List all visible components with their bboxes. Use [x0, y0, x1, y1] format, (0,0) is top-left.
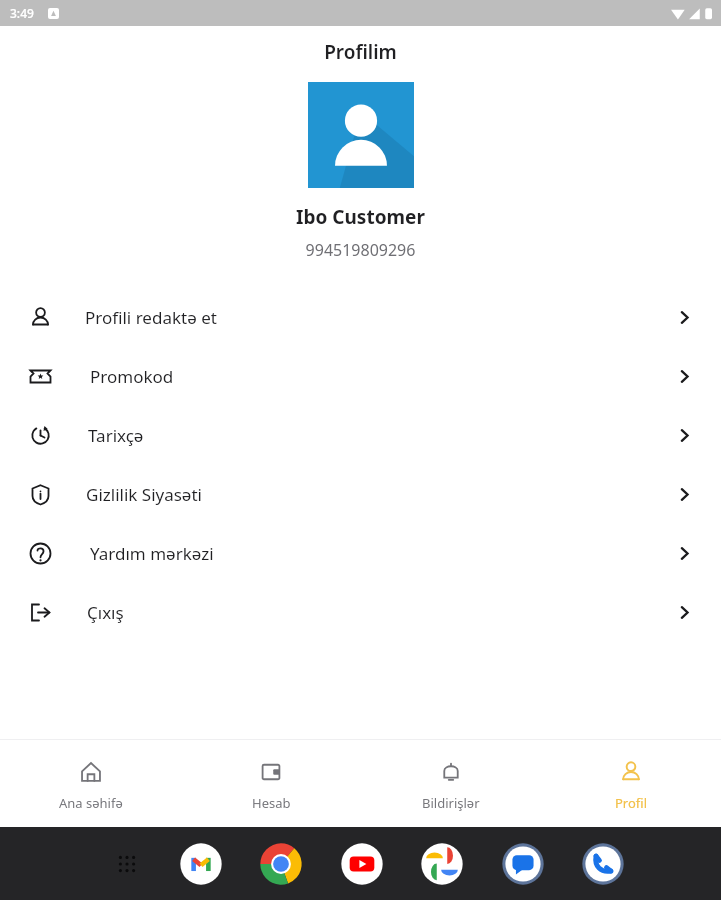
staticText: Profili redaktə et — [85, 306, 217, 329]
button[interactable]: Ana səhifə — [0, 740, 181, 827]
staticText: Profilim — [0, 39, 721, 65]
button[interactable]: Log out — [0, 583, 721, 642]
button[interactable]: YouTube — [340, 842, 384, 886]
staticText: Profil — [615, 794, 648, 812]
staticText: Bildirişlər — [422, 794, 480, 812]
button[interactable]: Profil — [541, 740, 721, 827]
button[interactable]: Gmail — [179, 842, 223, 886]
button[interactable]: Bildirişlər — [361, 740, 541, 827]
button[interactable]: Help center — [0, 524, 721, 583]
button[interactable]: Messages — [501, 842, 545, 886]
staticText: 994519809296 — [0, 239, 721, 261]
button[interactable]: History — [0, 406, 721, 465]
button[interactable]: Chrome — [259, 842, 303, 886]
staticText: Yardım mərkəzi — [90, 542, 214, 565]
button[interactable]: All apps — [112, 849, 142, 879]
staticText: Ibo Customer — [0, 204, 721, 230]
button[interactable]: Phone — [581, 842, 625, 886]
button[interactable]: Photos — [420, 842, 464, 886]
staticText: Tarixçə — [88, 424, 144, 447]
button[interactable]: Privacy policy — [0, 465, 721, 524]
staticText: Promokod — [90, 365, 174, 388]
staticText: Gizlilik Siyasəti — [86, 483, 202, 506]
staticText: Ana səhifə — [59, 794, 123, 812]
staticText: 3:49 — [10, 5, 34, 21]
staticText: Hesab — [252, 794, 291, 812]
button[interactable]: Edit profile — [0, 288, 721, 347]
staticText: Çıxış — [87, 601, 124, 624]
button[interactable]: Hesab — [181, 740, 361, 827]
button[interactable]: Promo code — [0, 347, 721, 406]
